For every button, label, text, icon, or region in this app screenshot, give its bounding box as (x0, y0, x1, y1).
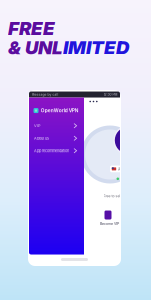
staticText: Free to sele (103, 194, 122, 198)
staticText: App recommendation (34, 148, 69, 153)
staticText: About us (34, 136, 49, 141)
button[interactable]: Become VIP u (29, 91, 53, 107)
staticText: Un (118, 167, 123, 171)
button[interactable]: About us (29, 132, 84, 144)
staticText: 12:30 PM (103, 93, 117, 96)
staticText: OpenWorld VPN (41, 108, 79, 113)
staticText: & UNL (8, 36, 63, 59)
button[interactable]: More options (87, 97, 100, 105)
button[interactable]: App recommendation (29, 144, 84, 157)
staticText: Message by call (31, 93, 58, 96)
staticText: FREE (8, 17, 55, 40)
staticText: VIP (34, 123, 40, 128)
button[interactable]: VIP (29, 119, 84, 132)
staticText: Become VIP u (100, 222, 122, 226)
staticText: IMITED (63, 36, 129, 59)
